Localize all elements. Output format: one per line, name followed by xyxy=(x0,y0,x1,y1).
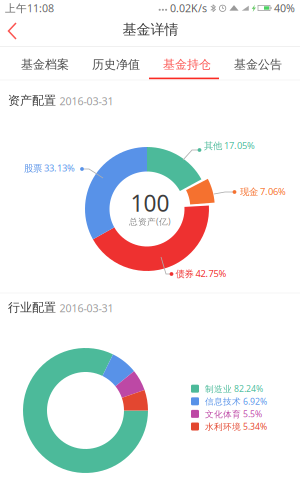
staticText: 现金 7.06% xyxy=(240,185,286,198)
button[interactable]: 基金档案 xyxy=(10,48,80,81)
staticText: 股票 33.13% xyxy=(24,162,75,174)
staticText: 基金详情 xyxy=(122,21,178,38)
button[interactable]: 返回 xyxy=(0,16,32,46)
staticText: 信息技术 6.92% xyxy=(205,395,267,407)
button[interactable]: 基金公告 xyxy=(223,48,293,81)
staticText: 资产配置 xyxy=(8,93,56,108)
staticText: 上午11:08 xyxy=(5,1,54,15)
staticText: 基金持仓 xyxy=(163,57,211,72)
staticText: 基金公告 xyxy=(234,57,282,72)
staticText: 水利环境 5.34% xyxy=(205,421,267,432)
staticText: 0.02K/s xyxy=(170,1,207,15)
staticText: 总资产(亿) xyxy=(129,216,171,227)
staticText: 100 xyxy=(130,188,169,218)
staticText: 40% xyxy=(274,1,295,15)
staticText: 其他 17.05% xyxy=(204,139,255,152)
button[interactable]: 基金持仓 xyxy=(152,48,222,81)
staticText: 行业配置 xyxy=(8,300,56,315)
staticText: 制造业 82.24% xyxy=(205,383,263,395)
button[interactable]: 历史净值 xyxy=(81,48,151,81)
staticText: 历史净值 xyxy=(92,57,140,72)
staticText: 基金档案 xyxy=(21,57,69,72)
staticText: 文化体育 5.5% xyxy=(205,408,262,420)
staticText: 债券 42.75% xyxy=(175,267,226,280)
staticText: 2016-03-31 xyxy=(59,301,113,315)
staticText: 2016-03-31 xyxy=(59,94,113,108)
